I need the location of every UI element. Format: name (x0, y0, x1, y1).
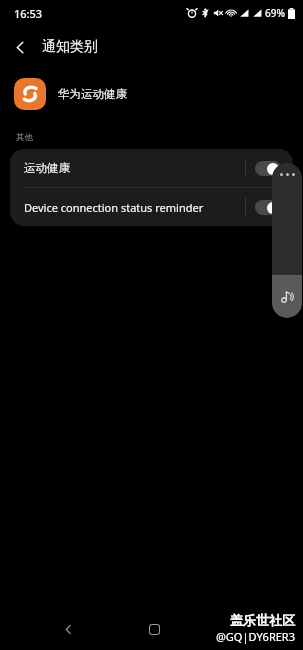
staticText: 69% (265, 6, 285, 20)
button[interactable]: Toggle Device connection status reminder (255, 200, 281, 215)
button[interactable]: Toggle 运动健康 (255, 161, 281, 176)
staticText: 华为运动健康 (58, 87, 127, 101)
staticText: 运动健康 (24, 161, 245, 175)
button[interactable]: Home (138, 613, 170, 645)
button[interactable]: Device connection status reminder (10, 188, 293, 226)
button[interactable]: Music (272, 275, 302, 318)
staticText: 盖乐世社区 (230, 612, 295, 628)
staticText: @GQ|DY6RER3 (215, 629, 295, 644)
staticText: 其他 (16, 132, 33, 143)
button[interactable]: 华为运动健康 (0, 68, 303, 120)
button[interactable]: Edge panel (272, 163, 302, 318)
button[interactable]: Back (0, 27, 40, 67)
button[interactable]: 运动健康 (10, 149, 293, 187)
staticText: 通知类别 (42, 38, 98, 56)
staticText: 16:53 (14, 6, 43, 21)
staticText: Device connection status reminder (24, 200, 245, 215)
button[interactable]: Back (52, 613, 84, 645)
